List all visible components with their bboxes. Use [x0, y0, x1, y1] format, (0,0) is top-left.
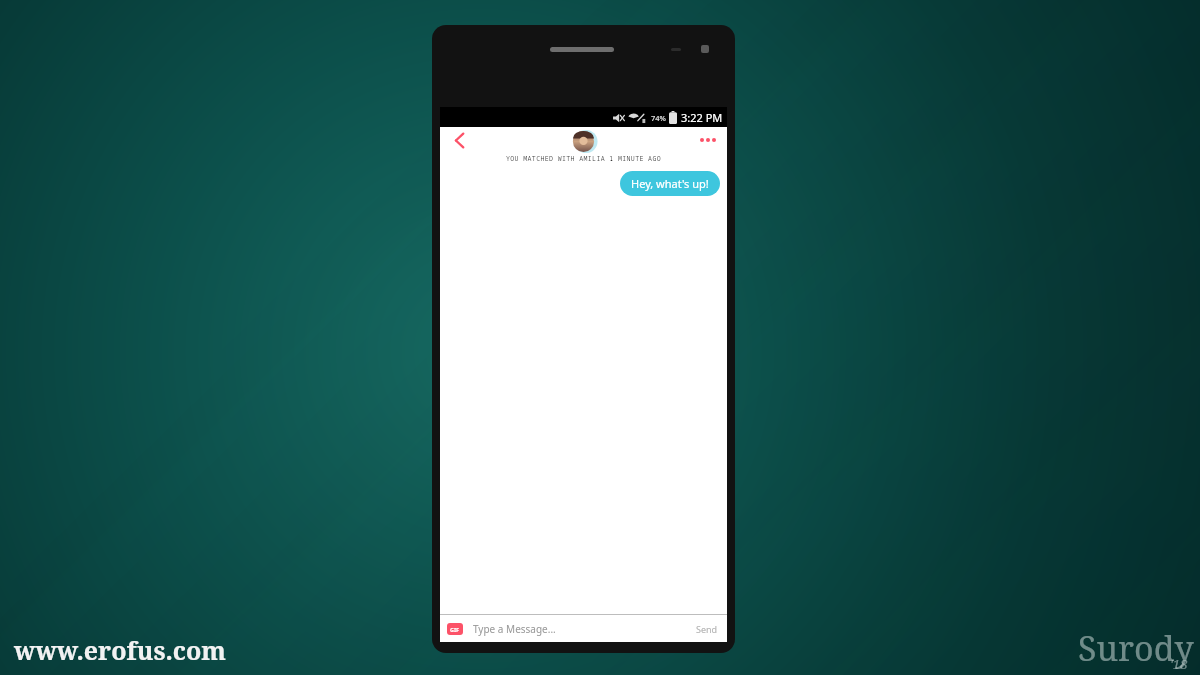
staticText: 3:22 PM	[681, 110, 723, 125]
staticText: '18	[1170, 655, 1188, 673]
button[interactable]: Send	[694, 623, 720, 635]
button[interactable]: More options	[695, 130, 721, 150]
staticText: Hey, what's up!	[631, 176, 709, 191]
staticText: 74%	[651, 113, 666, 123]
button[interactable]: Amilia profile	[572, 130, 595, 153]
staticText: Type a Message...	[473, 622, 556, 636]
staticText: GIF	[450, 626, 460, 633]
button[interactable]: Type a Message...	[473, 622, 694, 636]
button[interactable]: Hey, what's up!	[620, 171, 720, 196]
staticText: Surody	[1078, 625, 1194, 671]
button[interactable]: Send a GIF	[447, 623, 463, 635]
staticText: Send	[696, 623, 718, 635]
staticText: www.erofus.com	[14, 633, 226, 667]
button[interactable]: Back	[448, 129, 470, 151]
staticText: YOU MATCHED WITH AMILIA 1 MINUTE AGO	[440, 154, 727, 163]
